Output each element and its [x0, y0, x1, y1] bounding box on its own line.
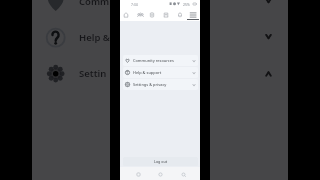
staticText: Help &	[79, 31, 110, 44]
button[interactable]: Home	[155, 169, 165, 179]
button[interactable]: Marketplace	[146, 9, 158, 21]
staticText: 25%	[183, 2, 190, 7]
button[interactable]: Friends	[134, 9, 146, 21]
button[interactable]: Watch	[160, 9, 172, 21]
button[interactable]: Home	[120, 9, 132, 21]
button[interactable]: Settings & privacy	[123, 79, 198, 90]
staticText: 7:34	[131, 2, 138, 7]
staticText: Settin	[79, 67, 107, 80]
staticText: Settings & privacy	[133, 82, 167, 87]
staticText: Help & support	[133, 70, 162, 75]
button[interactable]: Help & support	[123, 67, 198, 78]
staticText: Community resources	[133, 58, 174, 63]
staticText: Log out	[154, 159, 168, 164]
button[interactable]: Notifications	[174, 9, 186, 21]
button[interactable]: Menu	[187, 9, 199, 21]
button[interactable]: Community resources	[123, 55, 198, 66]
button[interactable]: Back	[178, 169, 188, 179]
staticText: Comm	[79, 0, 110, 8]
button[interactable]: Log out	[123, 157, 198, 166]
button[interactable]: Recents	[133, 169, 143, 179]
